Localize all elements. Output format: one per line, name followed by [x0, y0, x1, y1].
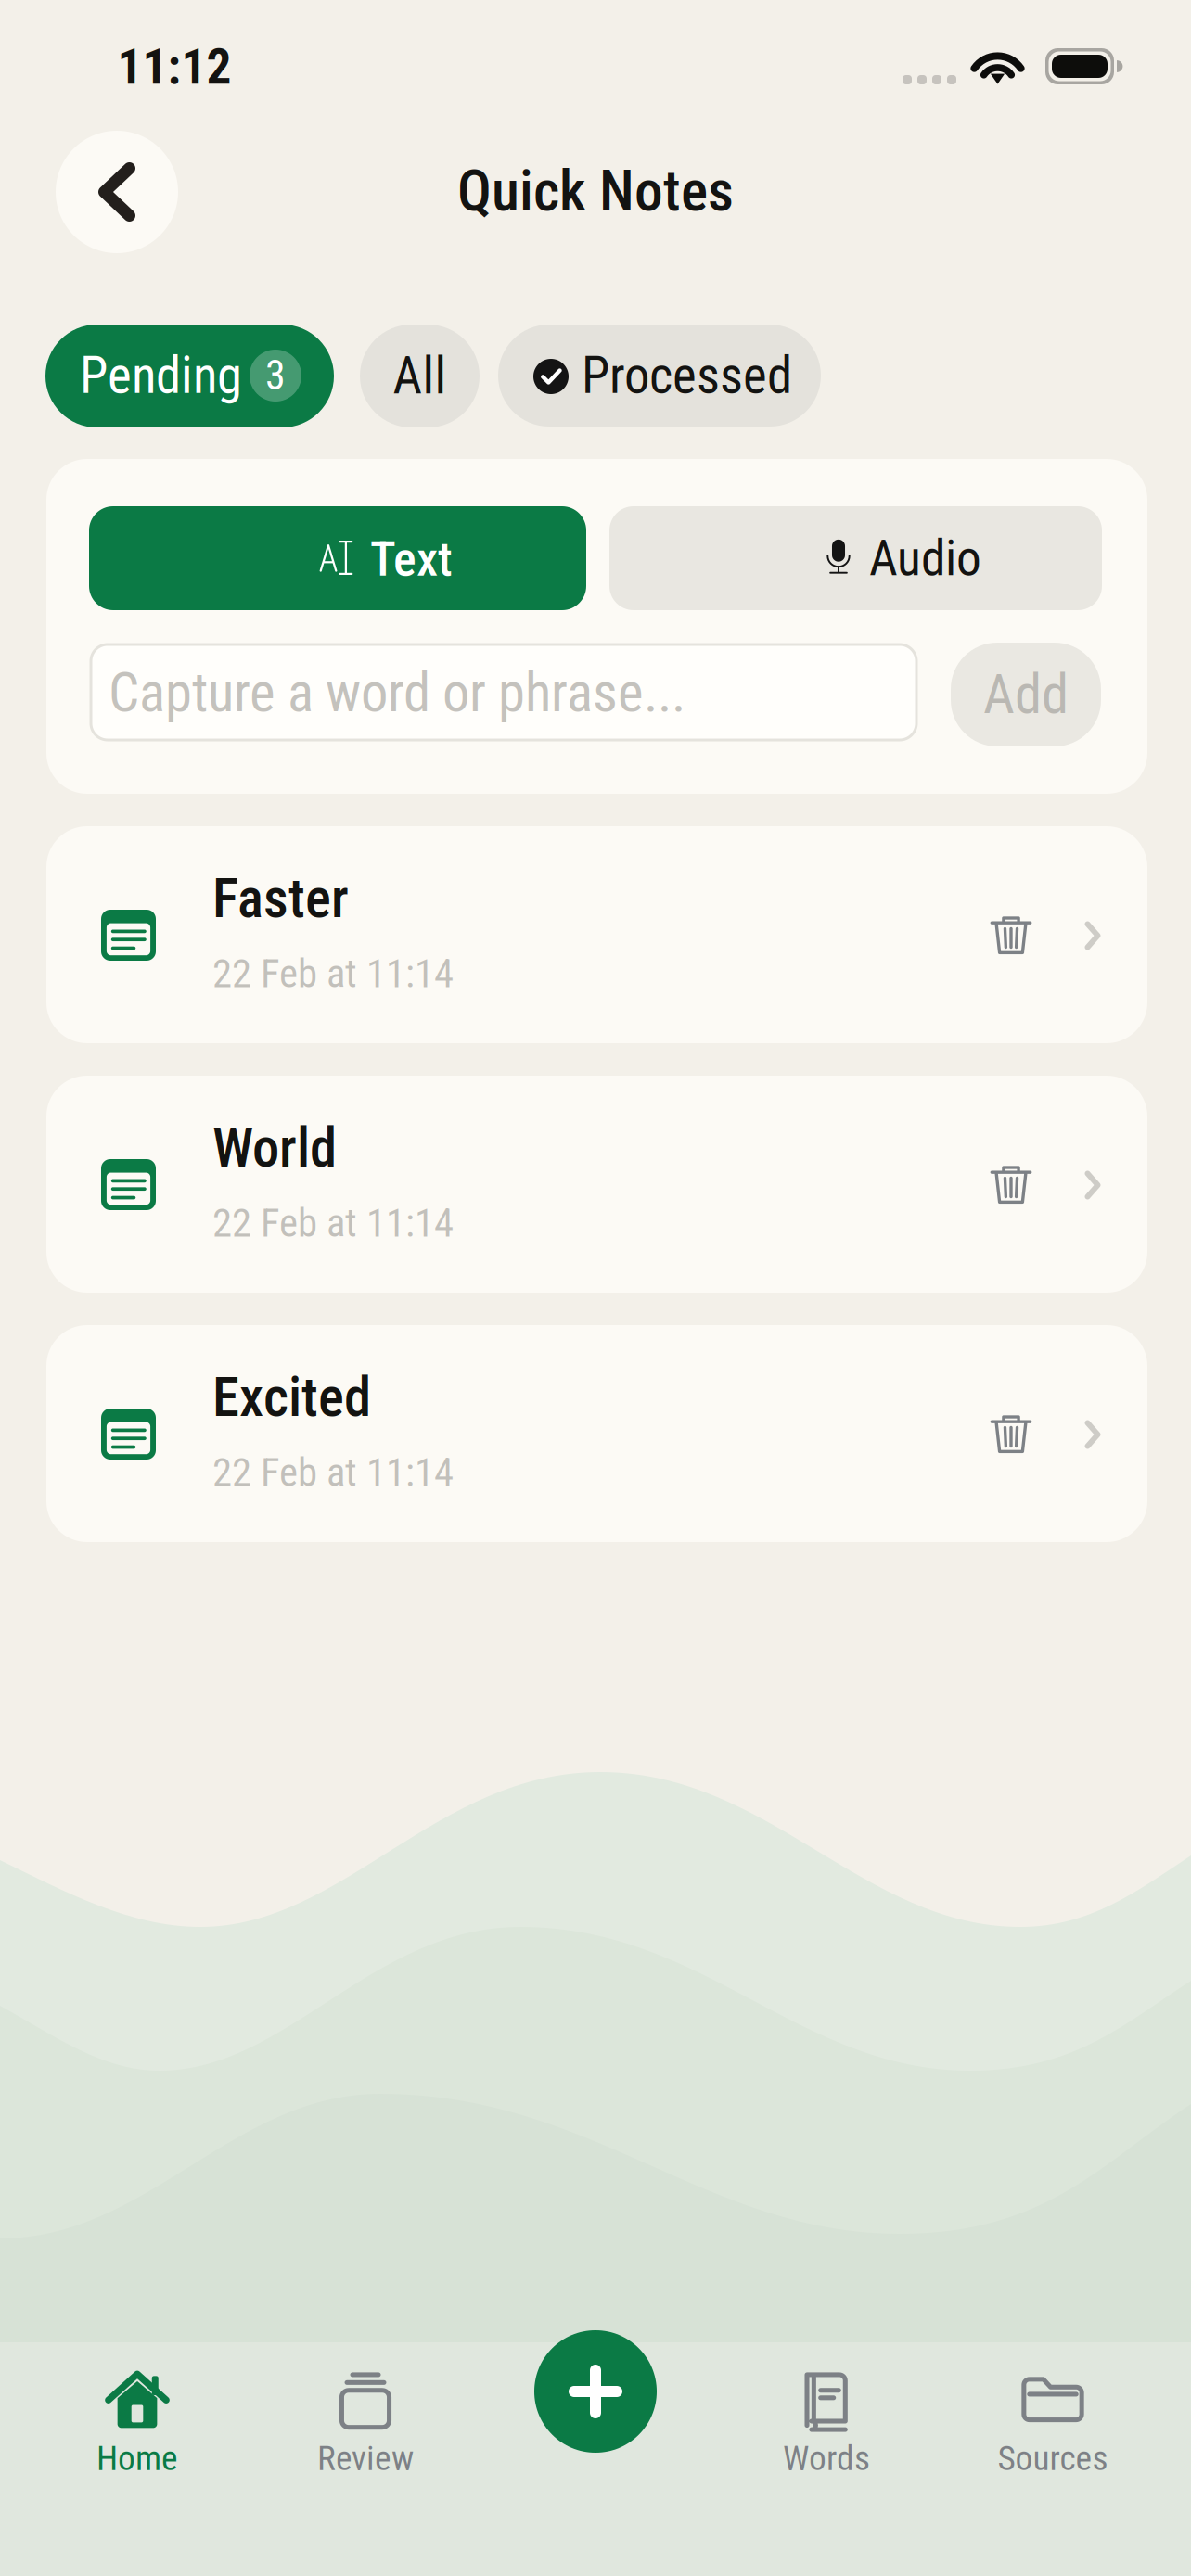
staticText: Capture a word or phrase... [109, 661, 685, 725]
button[interactable]: Words [712, 2360, 941, 2499]
staticText: 22 Feb at 11:14 [212, 1449, 454, 1496]
staticText: Processed [582, 346, 792, 405]
button[interactable]: Open note [1058, 1388, 1127, 1481]
staticText: Excited [212, 1366, 371, 1429]
button[interactable]: Excited [46, 1325, 1147, 1542]
button[interactable]: Back [56, 131, 178, 253]
staticText: Review [317, 2438, 414, 2478]
staticText: Sources [998, 2438, 1108, 2478]
staticText: Pending [80, 346, 242, 405]
button[interactable]: World [46, 1076, 1147, 1293]
button[interactable]: Delete note [959, 1132, 1063, 1236]
staticText: Add [983, 663, 1069, 726]
button[interactable]: Processed [498, 325, 821, 427]
staticText: 22 Feb at 11:14 [212, 1200, 454, 1246]
staticText: Text [370, 531, 453, 587]
button[interactable]: Faster [46, 826, 1147, 1043]
staticText: 11:12 [117, 38, 231, 96]
staticText: Words [783, 2438, 870, 2478]
staticText: 3 [265, 352, 286, 399]
staticText: 22 Feb at 11:14 [212, 950, 454, 997]
staticText: Audio [869, 529, 981, 587]
staticText: All [393, 346, 447, 406]
button[interactable]: Audio [609, 506, 1102, 610]
staticText: World [212, 1116, 337, 1180]
button[interactable]: Delete note [959, 1382, 1063, 1486]
button[interactable]: Sources [939, 2360, 1167, 2499]
button[interactable]: Open note [1058, 889, 1127, 982]
button[interactable]: Text [89, 506, 586, 610]
staticText: Home [96, 2438, 178, 2478]
button[interactable]: Pending [45, 325, 334, 427]
button[interactable]: Open note [1058, 1139, 1127, 1231]
staticText: Quick Notes [457, 158, 734, 224]
button[interactable]: Add note [534, 2330, 657, 2453]
button[interactable]: Add [951, 643, 1101, 746]
button[interactable]: Delete note [959, 883, 1063, 987]
button[interactable]: Home [23, 2360, 251, 2499]
button[interactable]: Review [251, 2360, 480, 2499]
staticText: Faster [212, 867, 349, 930]
button[interactable]: All [360, 325, 480, 427]
